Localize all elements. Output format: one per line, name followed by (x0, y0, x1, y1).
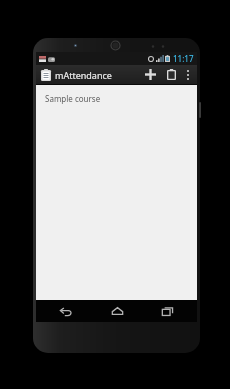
button[interactable]: mAttendance (40, 68, 113, 82)
button[interactable]: Back (46, 300, 86, 322)
button[interactable]: Add course (139, 65, 161, 84)
button[interactable]: More options (181, 65, 195, 84)
button[interactable]: Home (97, 300, 137, 322)
staticText: mAttendance (55, 69, 112, 81)
button[interactable]: Take attendance (161, 65, 181, 84)
staticText: Sample course (45, 93, 101, 104)
staticText: 11:17 (173, 53, 194, 64)
button[interactable]: Sample course (36, 85, 197, 111)
button[interactable]: Recent apps (147, 300, 187, 322)
